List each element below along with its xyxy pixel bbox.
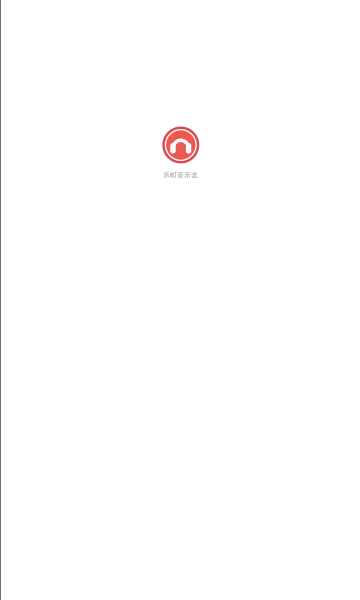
button[interactable]: 乐町音乐盒 [161,125,201,179]
staticText: 乐町音乐盒 [163,171,198,179]
